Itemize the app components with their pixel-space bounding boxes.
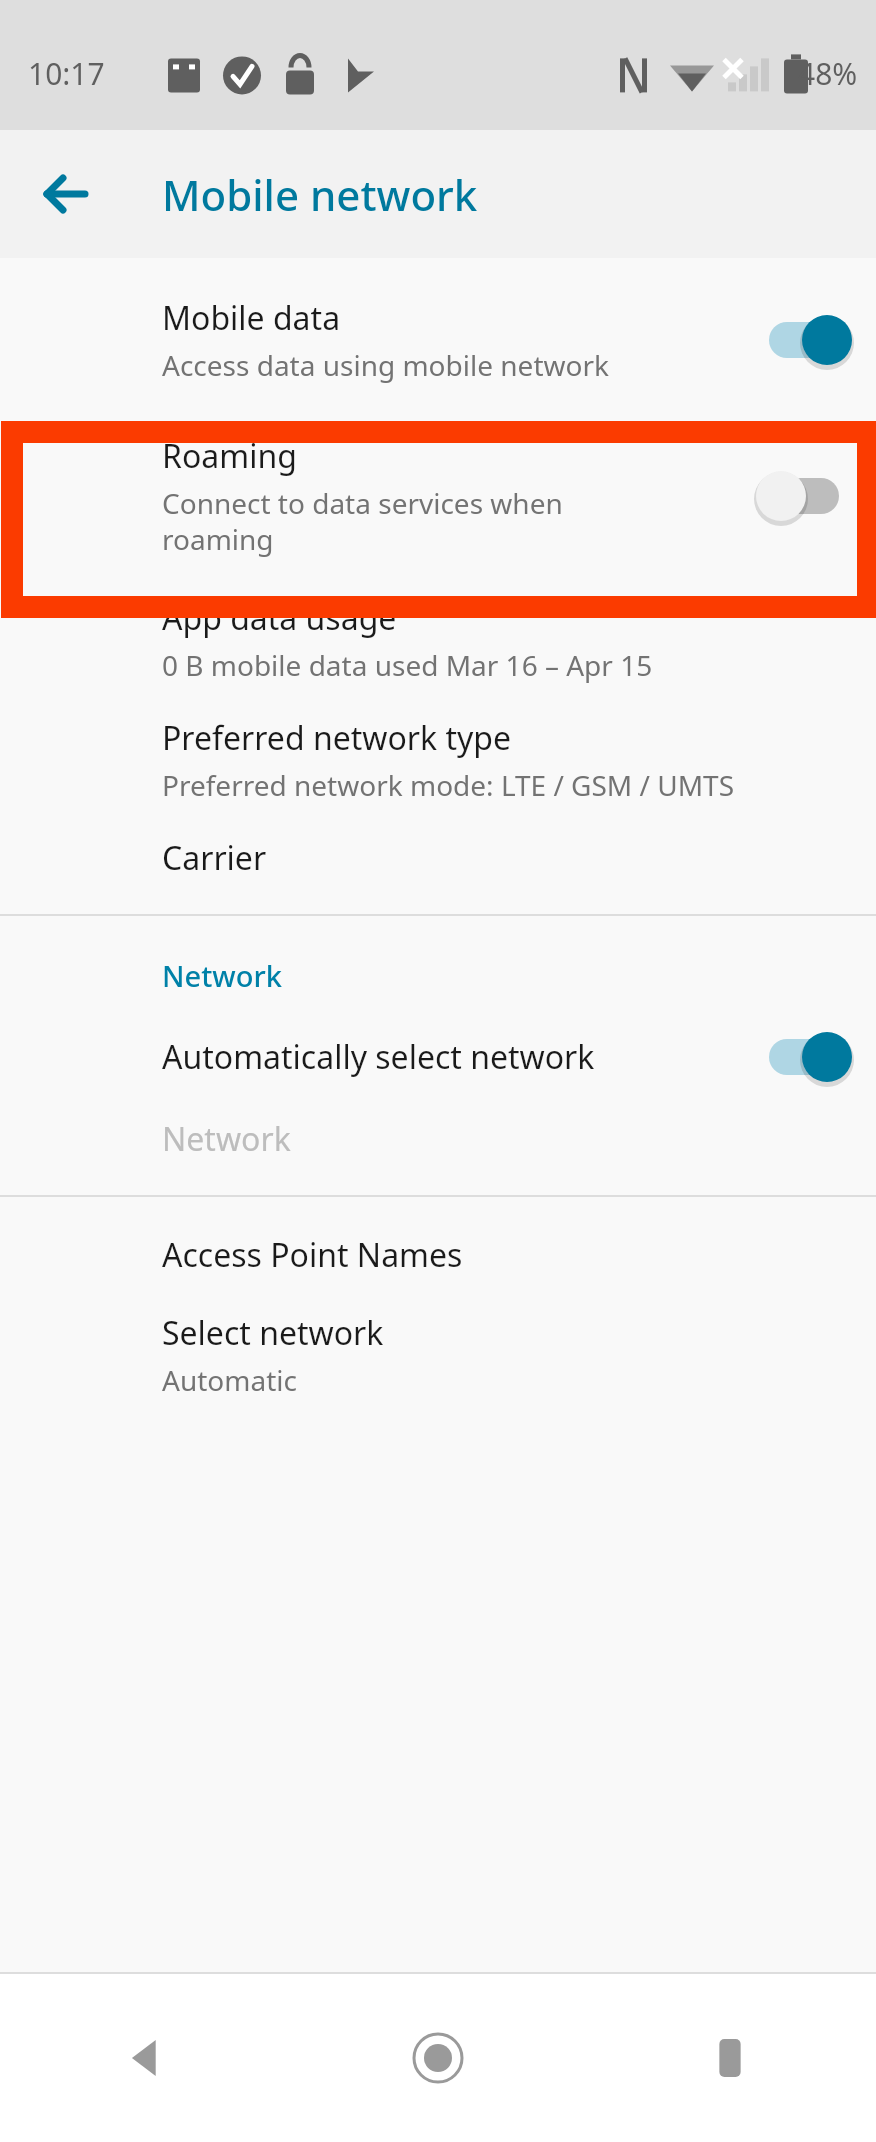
button[interactable]: Recents <box>584 1974 876 2142</box>
staticText: Connect to data services when roaming <box>162 484 592 558</box>
button[interactable]: Toggle on <box>756 1029 852 1085</box>
staticText: Roaming <box>162 434 297 478</box>
button[interactable]: Roaming <box>0 434 876 558</box>
button[interactable]: App data usage <box>0 596 876 684</box>
button[interactable]: Select network <box>0 1311 876 1399</box>
staticText: 0 B mobile data used Mar 16 – Apr 15 <box>162 646 653 684</box>
staticText: 10:17 <box>28 53 105 94</box>
button[interactable]: Back <box>18 147 112 241</box>
button[interactable]: Toggle off <box>756 468 852 524</box>
staticText: Preferred network type <box>162 716 511 760</box>
button[interactable]: Network <box>0 1117 876 1161</box>
staticText: Preferred network mode: LTE / GSM / UMTS <box>162 766 735 804</box>
button[interactable]: Back <box>0 1974 292 2142</box>
button[interactable]: Carrier <box>0 836 876 880</box>
button[interactable]: Home <box>292 1974 584 2142</box>
staticText: Network <box>162 956 282 995</box>
staticText: 48% <box>798 53 858 94</box>
staticText: App data usage <box>162 596 397 640</box>
button[interactable]: Automatically select network <box>0 1029 876 1085</box>
staticText: Access data using mobile network <box>162 346 609 384</box>
staticText: Mobile data <box>162 296 341 340</box>
staticText: Access Point Names <box>162 1233 463 1277</box>
button[interactable]: Toggle on <box>756 312 852 368</box>
staticText: Select network <box>162 1311 384 1355</box>
button[interactable]: Mobile data <box>0 296 876 384</box>
button[interactable]: Access Point Names <box>0 1233 876 1277</box>
button[interactable]: Preferred network type <box>0 716 876 804</box>
staticText: Network <box>162 1117 291 1161</box>
staticText: Automatic <box>162 1361 297 1399</box>
staticText: Automatically select network <box>162 1035 595 1079</box>
staticText: Carrier <box>162 836 267 880</box>
staticText: Mobile network <box>162 166 478 223</box>
